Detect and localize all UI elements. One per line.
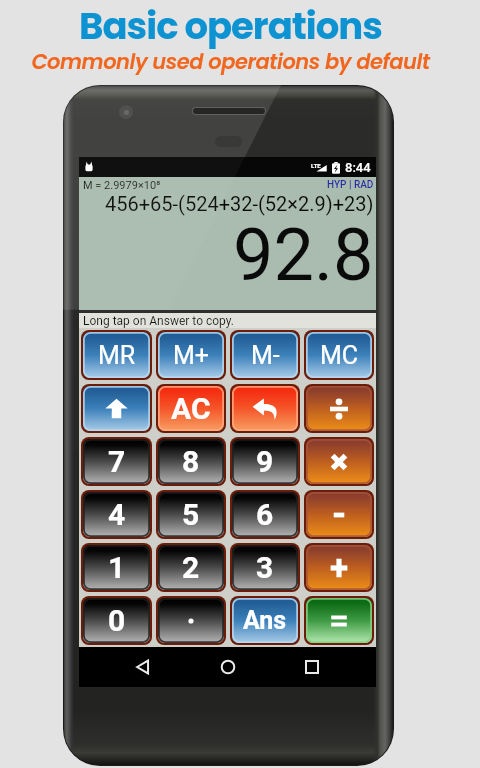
staticText: 9 [256, 444, 274, 479]
staticText: M = 2.9979×10⁸ [83, 179, 161, 192]
staticText: 92.8 [233, 213, 374, 297]
button[interactable]: Home [208, 647, 248, 687]
button[interactable]: Multiply [306, 439, 372, 484]
button[interactable]: MR [83, 332, 150, 378]
button[interactable]: Ans [232, 598, 298, 643]
button[interactable]: 2 [158, 545, 224, 590]
button[interactable]: Minus [306, 492, 372, 537]
staticText: MC [320, 341, 359, 370]
staticText: 8 [182, 444, 200, 479]
button[interactable]: Shift [83, 386, 150, 431]
staticText: 8:44 [345, 160, 371, 175]
staticText: LTE [311, 162, 321, 169]
staticText: M+ [173, 341, 210, 370]
staticText: 2 [182, 550, 200, 585]
button[interactable]: 8 [158, 439, 224, 484]
staticText: 0 [108, 603, 126, 638]
button[interactable]: Undo [232, 386, 298, 431]
button[interactable]: Decimal point [158, 598, 224, 643]
button[interactable]: Recent apps [292, 647, 332, 687]
button[interactable]: 4 [83, 492, 150, 537]
staticText: 456+65-(524+32-(52×2.9)+23) [105, 192, 374, 215]
staticText: 5 [182, 497, 200, 532]
button[interactable]: 9 [232, 439, 298, 484]
staticText: 6 [256, 497, 274, 532]
button[interactable]: 5 [158, 492, 224, 537]
staticText: 4 [108, 497, 126, 532]
other: Notification [83, 161, 95, 173]
button[interactable]: Back [123, 647, 163, 687]
staticText: HYP | RAD [327, 179, 374, 191]
staticText: Commonly used operations by default [31, 47, 430, 76]
staticText: M- [251, 341, 280, 370]
button[interactable]: AC [158, 386, 224, 431]
staticText: 7 [108, 444, 126, 479]
staticText: MR [98, 341, 136, 370]
button[interactable]: Plus [306, 545, 372, 590]
button[interactable]: 0 [83, 598, 150, 643]
button[interactable]: MC [306, 332, 372, 378]
staticText: AC [171, 391, 211, 426]
button[interactable]: 6 [232, 492, 298, 537]
button[interactable]: Equals [306, 598, 372, 643]
staticText: Ans [243, 606, 287, 635]
button[interactable]: Divide [306, 386, 372, 431]
staticText: Long tap on Answer to copy. [83, 314, 234, 328]
staticText: 3 [256, 550, 274, 585]
button[interactable]: M- [232, 332, 298, 378]
staticText: 1 [108, 550, 126, 585]
button[interactable]: 1 [83, 545, 150, 590]
button[interactable]: 7 [83, 439, 150, 484]
button[interactable]: M+ [158, 332, 224, 378]
staticText: Basic operations [79, 0, 382, 52]
button[interactable]: 3 [232, 545, 298, 590]
